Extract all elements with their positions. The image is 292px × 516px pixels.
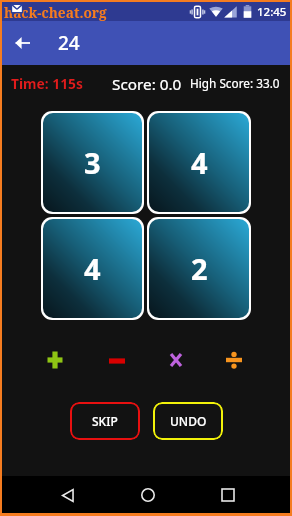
button[interactable]: 3 <box>43 113 142 212</box>
button[interactable]: Multiply <box>159 349 193 371</box>
button[interactable]: 2 <box>149 219 249 318</box>
button[interactable]: Recent apps <box>211 478 245 512</box>
button[interactable]: Add <box>38 349 72 371</box>
staticText: 24 <box>58 30 80 56</box>
button[interactable]: 4 <box>43 219 142 318</box>
button[interactable]: UNDO <box>153 402 223 440</box>
staticText: 4 <box>191 143 208 182</box>
staticText: 12:45 <box>257 4 287 20</box>
button[interactable]: SKIP <box>70 402 140 440</box>
staticText: SKIP <box>92 413 118 429</box>
button[interactable]: Back <box>51 478 85 512</box>
staticText: hack-cheat.org <box>4 3 107 22</box>
staticText: 2 <box>191 249 208 288</box>
staticText: Time: 115s <box>11 74 83 92</box>
staticText: 4 <box>84 249 101 288</box>
staticText: UNDO <box>170 413 207 429</box>
button[interactable]: Subtract <box>100 350 134 372</box>
button[interactable]: Back <box>5 26 39 60</box>
button[interactable]: 4 <box>149 113 249 212</box>
staticText: High Score: 33.0 <box>190 75 280 91</box>
button[interactable]: Home <box>131 478 165 512</box>
button[interactable]: Divide <box>217 349 251 371</box>
staticText: 3 <box>84 143 101 182</box>
staticText: Score: 0.0 <box>112 74 182 92</box>
